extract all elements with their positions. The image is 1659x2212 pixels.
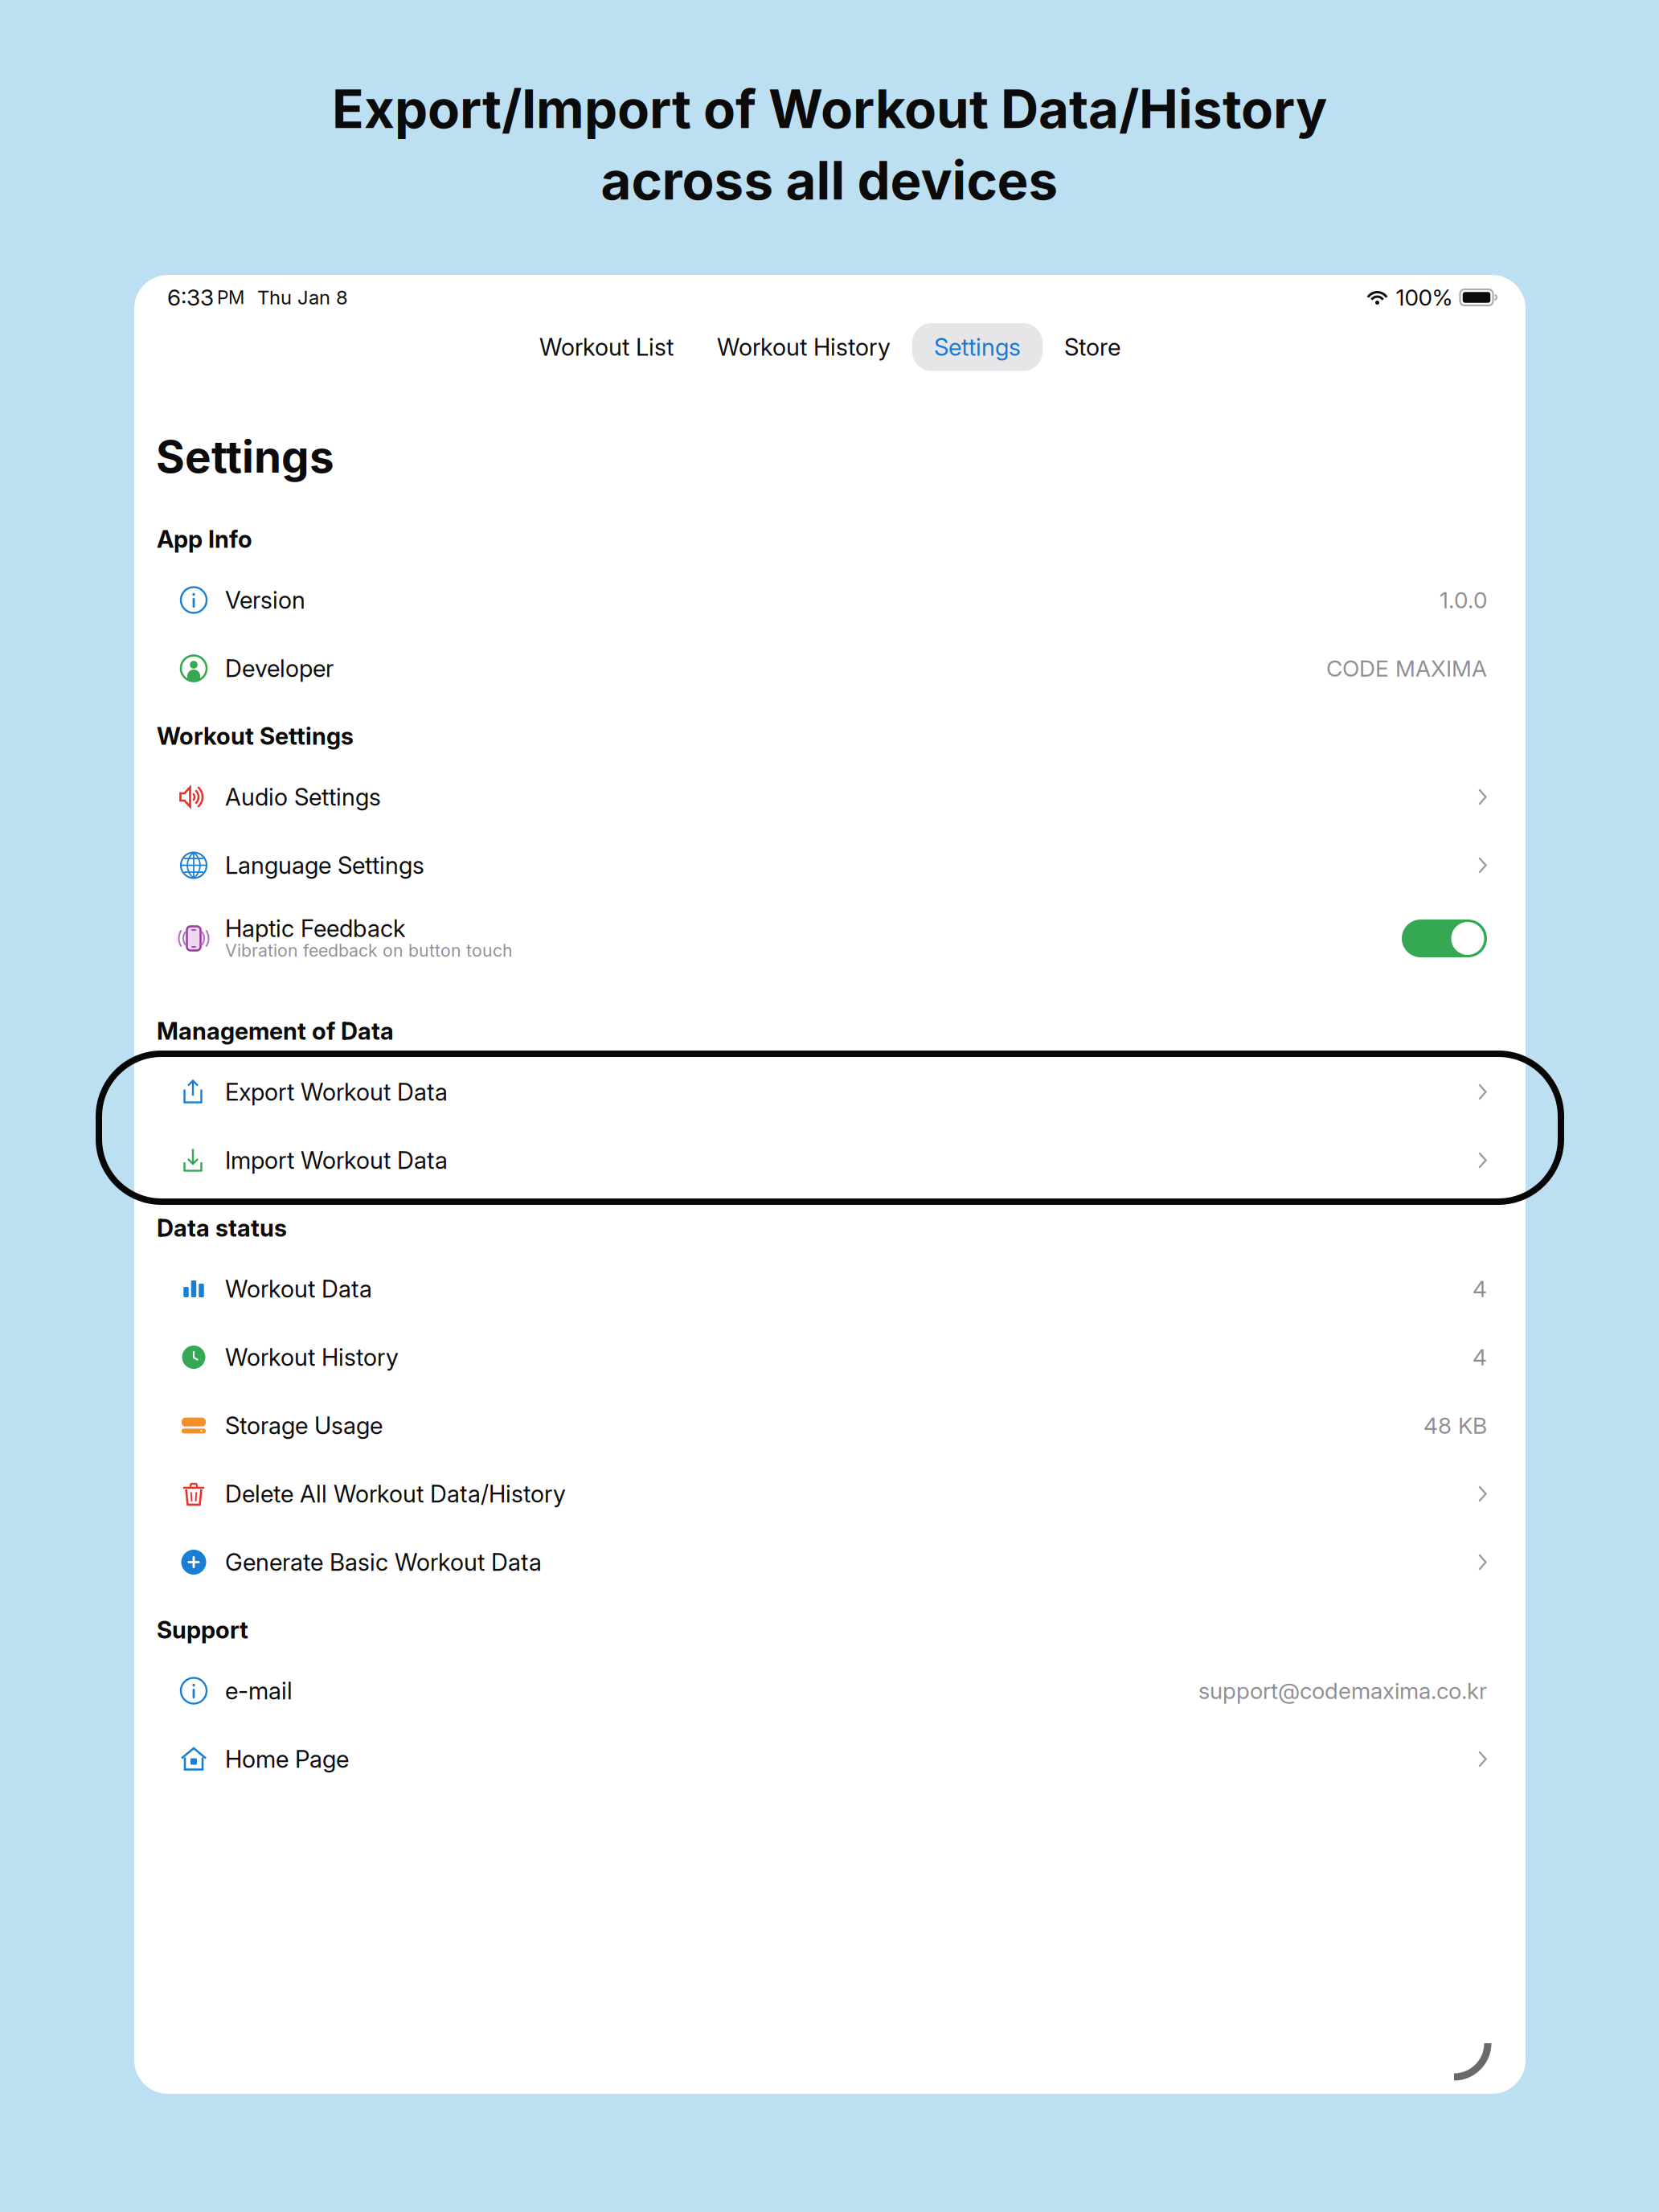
button[interactable]: Workout History: [695, 323, 912, 371]
button[interactable]: Workout History: [134, 1323, 1526, 1391]
staticText: Developer: [225, 654, 334, 683]
staticText: Workout Data: [225, 1275, 372, 1303]
staticText: Settings: [934, 333, 1021, 361]
button[interactable]: Settings: [912, 323, 1043, 371]
button[interactable]: e-mail: [134, 1657, 1526, 1725]
staticText: Data status: [157, 1214, 287, 1242]
staticText: e-mail: [225, 1677, 293, 1705]
button[interactable]: Storage Usage: [134, 1391, 1526, 1460]
staticText: Import Workout Data: [225, 1146, 448, 1175]
staticText: Audio Settings: [225, 783, 381, 811]
button[interactable]: Generate Basic Workout Data: [134, 1528, 1526, 1596]
staticText: 4: [1473, 1344, 1487, 1371]
staticText: Generate Basic Workout Data: [225, 1548, 542, 1576]
button[interactable]: Version: [134, 566, 1526, 634]
staticText: Workout Settings: [157, 722, 354, 750]
staticText: Support: [157, 1616, 248, 1644]
button[interactable]: Export Workout Data: [134, 1058, 1526, 1126]
staticText: App Info: [157, 525, 252, 553]
staticText: Export Workout Data: [225, 1078, 448, 1106]
staticText: CODE MAXIMA: [1326, 655, 1487, 682]
button[interactable]: Language Settings: [134, 831, 1526, 899]
staticText: 6:33: [167, 284, 214, 311]
staticText: Haptic Feedback: [225, 914, 406, 943]
staticText: Store: [1064, 333, 1120, 361]
staticText: 100%: [1396, 284, 1453, 311]
staticText: across all devices: [601, 149, 1058, 212]
staticText: support@codemaxima.co.kr: [1198, 1677, 1487, 1704]
button[interactable]: Workout List: [518, 323, 695, 371]
button[interactable]: Haptic Feedback: [134, 899, 1526, 997]
staticText: Vibration feedback on button touch: [225, 940, 513, 961]
staticText: Delete All Workout Data/History: [225, 1480, 566, 1508]
staticText: 1.0.0: [1440, 586, 1487, 614]
staticText: Export/Import of Workout Data/History: [332, 77, 1327, 141]
staticText: Workout History: [717, 333, 891, 361]
button[interactable]: Developer: [134, 634, 1526, 703]
staticText: Storage Usage: [225, 1411, 383, 1440]
staticText: Language Settings: [225, 851, 424, 880]
staticText: PM: [217, 286, 244, 308]
button[interactable]: Workout Data: [134, 1255, 1526, 1323]
button[interactable]: Home Page: [134, 1725, 1526, 1793]
button[interactable]: Audio Settings: [134, 763, 1526, 831]
staticText: 4: [1473, 1275, 1487, 1303]
staticText: Workout List: [539, 333, 674, 361]
staticText: Workout History: [225, 1343, 399, 1371]
staticText: Home Page: [225, 1745, 349, 1773]
staticText: 48 KB: [1423, 1412, 1487, 1439]
staticText: Version: [225, 586, 305, 614]
staticText: Settings: [156, 430, 334, 483]
button[interactable]: Import Workout Data: [134, 1126, 1526, 1194]
button[interactable]: Delete All Workout Data/History: [134, 1460, 1526, 1528]
staticText: Thu Jan 8: [257, 286, 348, 309]
button[interactable]: Store: [1043, 323, 1142, 371]
staticText: Management of Data: [157, 1017, 394, 1045]
